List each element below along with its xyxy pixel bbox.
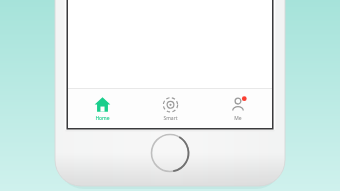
staticText: Smart	[163, 115, 178, 122]
button[interactable]: Home	[68, 89, 136, 128]
button[interactable]: Smart	[136, 89, 204, 128]
staticText: Home	[95, 115, 110, 122]
button[interactable]: Me	[204, 89, 272, 128]
staticText: Me	[234, 115, 242, 122]
button[interactable]: Home button	[150, 133, 190, 173]
